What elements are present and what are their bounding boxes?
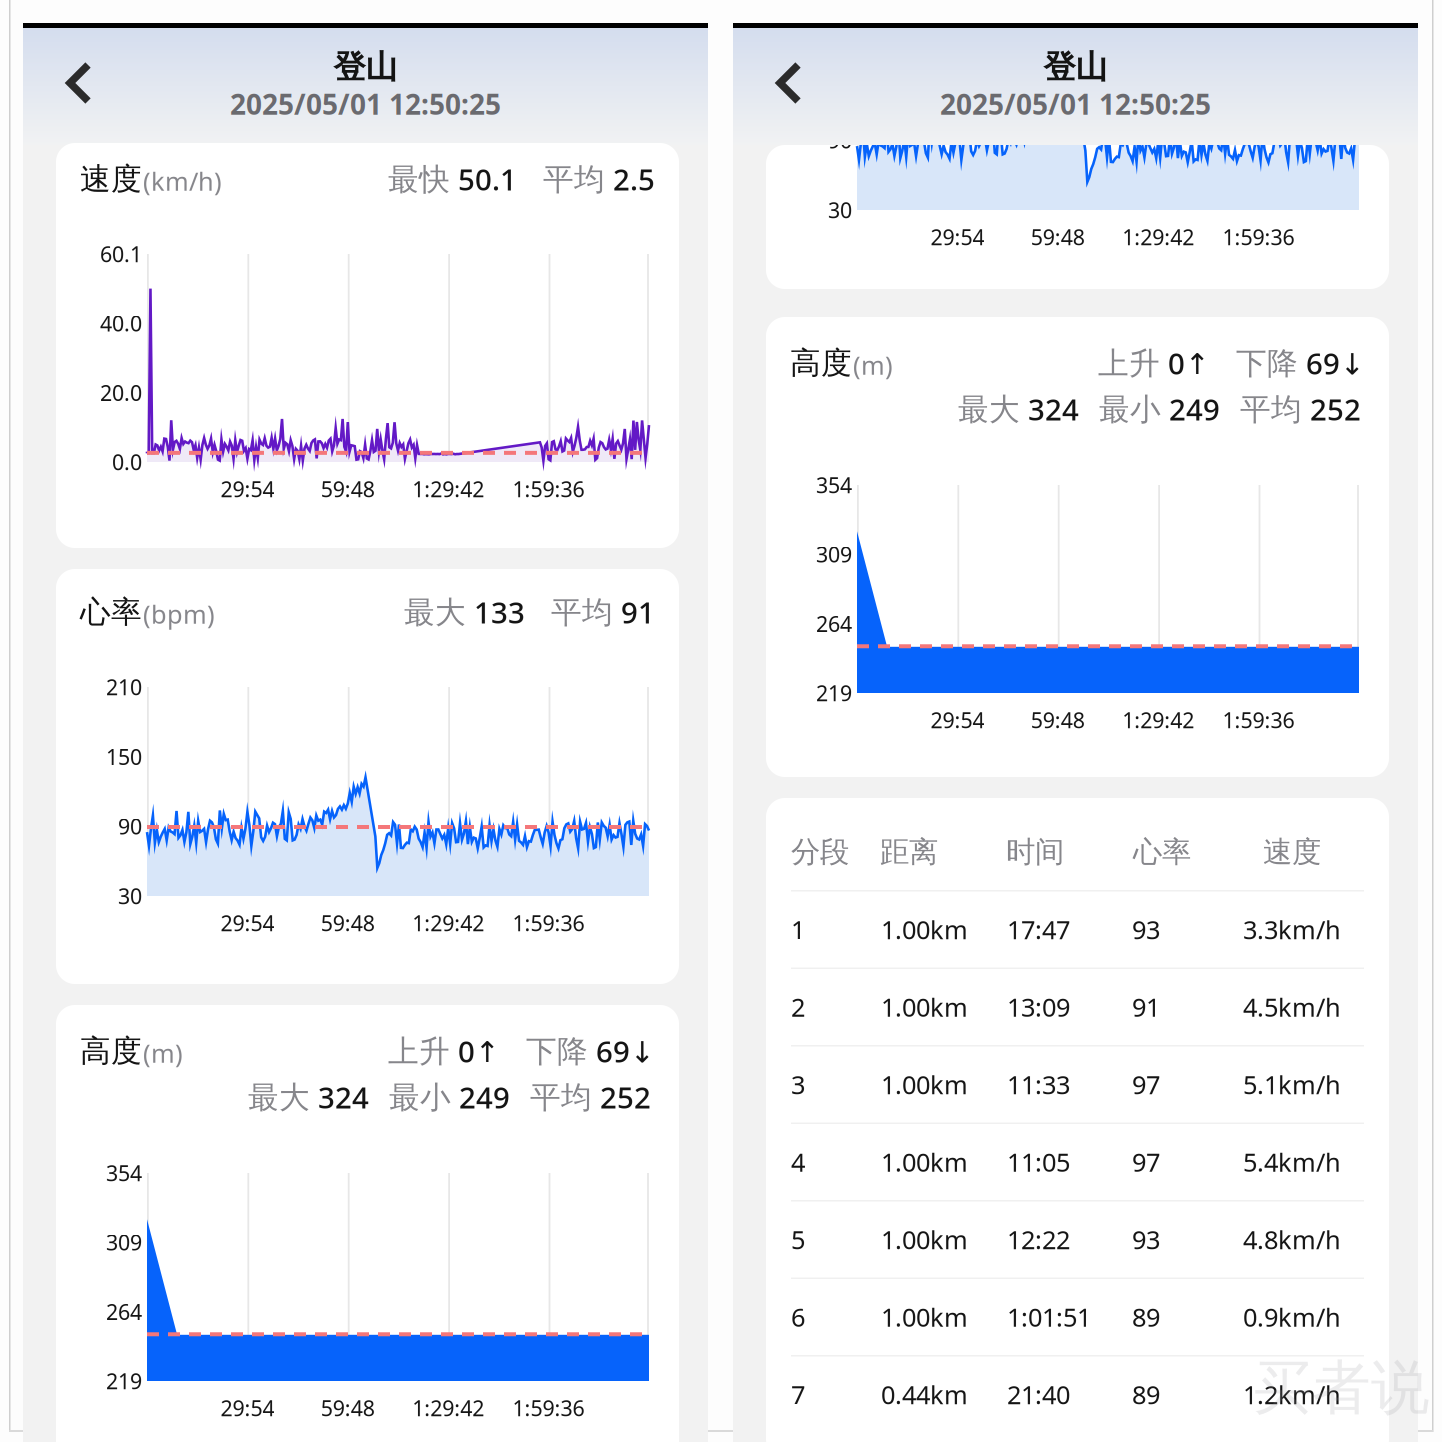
staticText: 29:54 (220, 1394, 274, 1422)
staticText: 平均 (530, 1079, 592, 1116)
staticText: 登山 (1043, 47, 1107, 87)
staticText: 133 (474, 592, 525, 631)
staticText: 249 (459, 1077, 510, 1116)
staticText: 5.4km/h (1243, 1145, 1341, 1179)
staticText: 29:54 (930, 223, 984, 251)
staticText: 0↑ (458, 1031, 500, 1070)
staticText: 2025/05/01 12:50:25 (230, 85, 501, 123)
staticText: 3.3km/h (1243, 913, 1341, 946)
staticText: 上升 (388, 1033, 450, 1070)
staticText: 29:54 (220, 909, 274, 937)
staticText: 91 (1132, 990, 1160, 1024)
staticText: 2 (791, 990, 805, 1024)
staticText: 心率 (80, 593, 142, 631)
staticText: 1.00km (881, 1068, 968, 1101)
staticText: 5 (791, 1223, 805, 1256)
staticText: 登山 (333, 47, 397, 87)
staticText: 97 (1132, 1145, 1160, 1179)
staticText: 264 (106, 1297, 142, 1326)
staticText: 252 (1310, 389, 1361, 428)
staticText: 1.00km (881, 1223, 968, 1256)
staticText: 219 (816, 679, 852, 707)
staticText: 30 (118, 882, 142, 910)
staticText: 1:59:36 (513, 1394, 585, 1422)
staticText: 4.8km/h (1243, 1223, 1341, 1256)
staticText: 249 (1169, 389, 1220, 428)
staticText: 93 (1132, 913, 1160, 946)
staticText: 309 (106, 1228, 142, 1256)
staticText: 距离 (880, 834, 938, 870)
staticText: 354 (816, 471, 852, 499)
button[interactable]: Back (763, 53, 819, 113)
staticText: 平均 (1240, 391, 1302, 428)
staticText: 17:47 (1007, 913, 1070, 946)
staticText: 91 (621, 592, 655, 631)
staticText: 时间 (1006, 834, 1064, 870)
staticText: 0.44km (881, 1378, 968, 1411)
staticText: (bpm) (143, 597, 215, 631)
staticText: 354 (106, 1159, 142, 1187)
staticText: 309 (816, 540, 852, 568)
staticText: 平均 (551, 594, 613, 631)
staticText: (m) (853, 348, 893, 382)
staticText: 0↑ (1168, 343, 1210, 382)
staticText: 最大 (248, 1079, 310, 1116)
staticText: 1:29:42 (1122, 223, 1194, 251)
staticText: (m) (143, 1036, 183, 1070)
button[interactable]: Back (53, 53, 109, 113)
staticText: 219 (106, 1367, 142, 1395)
staticText: 心率 (1133, 834, 1191, 870)
staticText: 324 (318, 1077, 369, 1116)
staticText: 1.00km (881, 1145, 968, 1179)
staticText: 1:29:42 (1122, 706, 1194, 734)
staticText: 1:01:51 (1007, 1300, 1091, 1334)
staticText: 上升 (1098, 345, 1160, 382)
staticText: 11:05 (1007, 1145, 1070, 1179)
staticText: 最小 (1099, 391, 1161, 428)
staticText: 1.00km (881, 913, 968, 946)
staticText: 7 (791, 1378, 805, 1411)
staticText: 264 (816, 609, 852, 638)
staticText: 1:29:42 (412, 909, 484, 937)
staticText: 高度 (790, 344, 852, 382)
staticText: 59:48 (321, 909, 375, 937)
staticText: 40.0 (100, 309, 142, 337)
staticText: 下降 (526, 1033, 588, 1070)
staticText: 2025/05/01 12:50:25 (940, 85, 1211, 123)
staticText: 1:59:36 (513, 475, 585, 503)
staticText: 买者说 (1253, 1352, 1430, 1424)
staticText: 59:48 (1031, 706, 1085, 734)
staticText: 252 (600, 1077, 651, 1116)
staticText: 50.1 (458, 159, 517, 198)
staticText: 最大 (958, 391, 1020, 428)
staticText: 89 (1132, 1378, 1160, 1411)
staticText: 59:48 (321, 475, 375, 503)
staticText: 6 (791, 1300, 805, 1334)
staticText: 速度 (1263, 834, 1321, 870)
staticText: 3 (791, 1068, 805, 1101)
staticText: 324 (1028, 389, 1079, 428)
staticText: 59:48 (321, 1394, 375, 1422)
staticText: 90 (828, 126, 852, 154)
staticText: 1:29:42 (412, 1394, 484, 1422)
staticText: 1.00km (881, 990, 968, 1024)
staticText: 最小 (389, 1079, 451, 1116)
staticText: 5.1km/h (1243, 1068, 1341, 1101)
staticText: 最快 (388, 161, 450, 198)
staticText: 1.00km (881, 1300, 968, 1334)
staticText: 1 (791, 913, 805, 946)
staticText: 13:09 (1007, 990, 1070, 1024)
staticText: 210 (106, 673, 142, 701)
staticText: 29:54 (930, 706, 984, 734)
staticText: 69↓ (596, 1031, 655, 1070)
staticText: 0.0 (112, 448, 142, 476)
staticText: 11:33 (1007, 1068, 1070, 1101)
staticText: 69↓ (1306, 343, 1365, 382)
staticText: 59:48 (1031, 223, 1085, 251)
staticText: 90 (118, 812, 142, 840)
staticText: 21:40 (1007, 1378, 1070, 1411)
staticText: 97 (1132, 1068, 1160, 1101)
staticText: 29:54 (220, 475, 274, 503)
